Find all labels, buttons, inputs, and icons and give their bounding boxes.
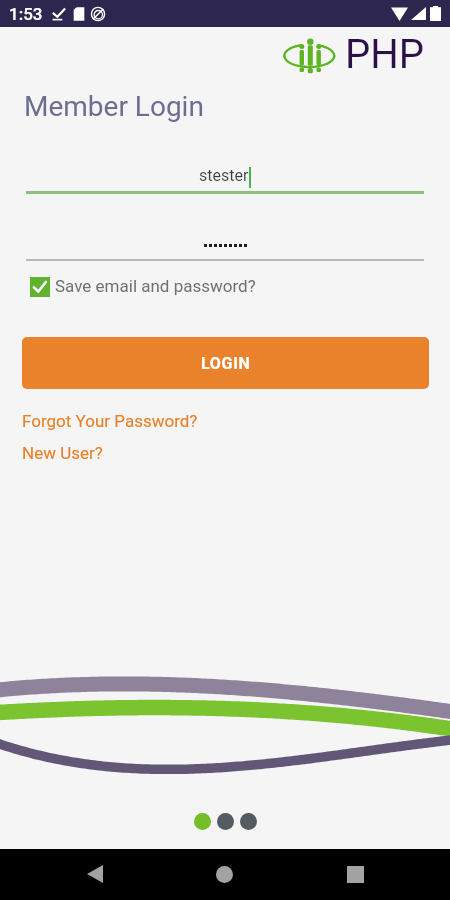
- button[interactable]: LOGIN: [22, 337, 429, 389]
- staticText: Save email and password?: [55, 276, 256, 296]
- staticText: PHP: [345, 31, 425, 78]
- staticText: LOGIN: [201, 354, 251, 373]
- staticText: Forgot Your Password?: [22, 411, 198, 431]
- button[interactable]: New User?: [22, 443, 103, 463]
- button[interactable]: Home: [200, 850, 248, 898]
- staticText: 1:53: [9, 4, 43, 24]
- staticText: Member Login: [24, 90, 204, 123]
- button[interactable]: Save email and password?: [30, 274, 256, 294]
- button[interactable]: Recent apps: [331, 850, 379, 898]
- button[interactable]: Forgot Your Password?: [22, 411, 198, 431]
- staticText: stester: [199, 166, 249, 185]
- button[interactable]: Back: [71, 850, 119, 898]
- staticText: New User?: [22, 443, 103, 463]
